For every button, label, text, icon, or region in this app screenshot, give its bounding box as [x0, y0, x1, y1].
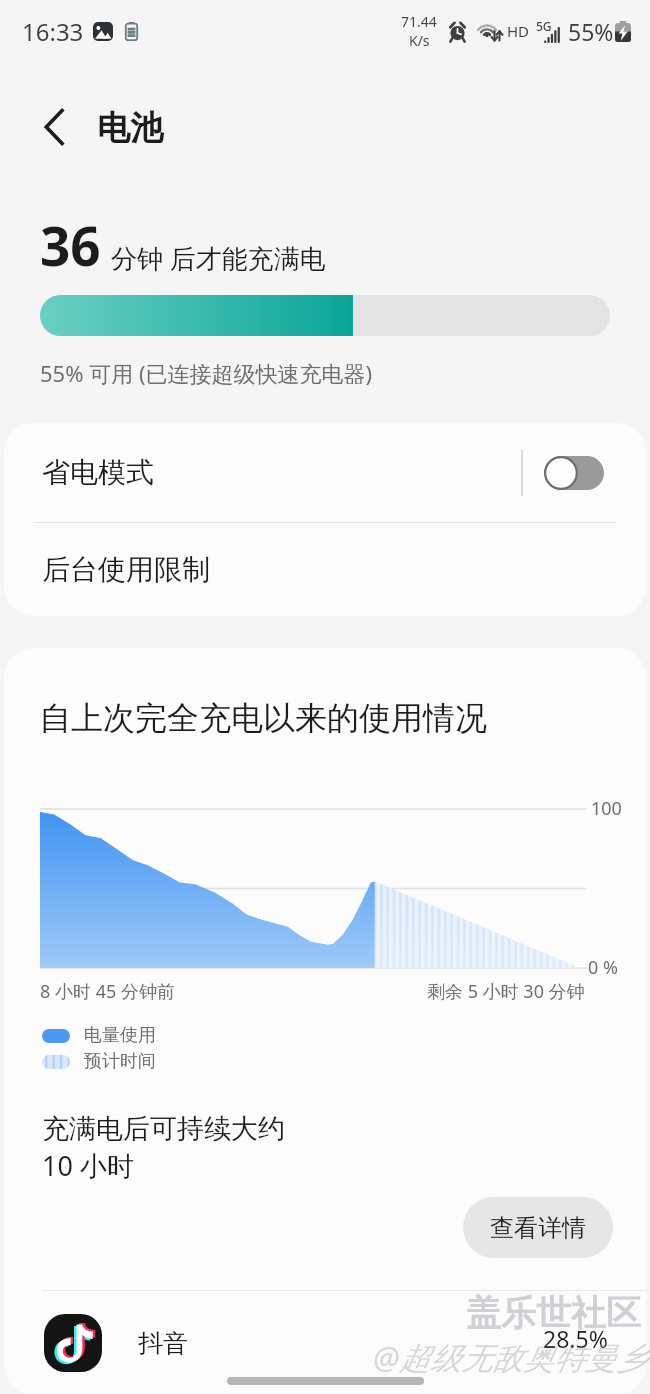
staticText: 电池: [97, 107, 163, 149]
staticText: 抖音: [138, 1328, 188, 1359]
staticText: 5G: [536, 18, 552, 34]
staticText: 盖乐世社区: [466, 1291, 641, 1335]
staticText: @超级无敌奥特曼乡: [373, 1336, 648, 1378]
staticText: K/s: [409, 31, 430, 50]
staticText: 省电模式: [42, 455, 154, 490]
staticText: 剩余 5 小时 30 分钟: [427, 979, 585, 1004]
staticText: 电量使用: [84, 1024, 156, 1047]
staticText: HD: [507, 21, 530, 41]
button[interactable]: 省电模式: [4, 423, 646, 522]
staticText: 预计时间: [84, 1050, 156, 1073]
staticText: 28.5%: [543, 1323, 608, 1354]
button[interactable]: 后台使用限制: [4, 523, 646, 616]
staticText: 充满电后可持续大约: [42, 1112, 285, 1146]
staticText: 100: [591, 796, 622, 821]
staticText: 后台使用限制: [42, 552, 210, 587]
staticText: 分钟 后才能充满电: [111, 240, 326, 276]
button[interactable]: 抖音: [4, 1291, 646, 1394]
staticText: 8 小时 45 分钟前: [40, 979, 175, 1004]
staticText: 55% 可用 (已连接超级快速充电器): [40, 358, 373, 388]
button[interactable]: Back: [26, 100, 80, 154]
button[interactable]: Power saving toggle: [544, 456, 604, 490]
staticText: 71.44: [401, 12, 437, 31]
button[interactable]: 查看详情: [463, 1197, 613, 1258]
staticText: 查看详情: [490, 1213, 586, 1243]
staticText: 16:33: [22, 15, 84, 48]
staticText: 10 小时: [42, 1147, 134, 1184]
staticText: 36: [40, 209, 101, 281]
staticText: 55%: [568, 16, 614, 47]
staticText: 0 %: [588, 955, 618, 980]
staticText: 自上次完全充电以来的使用情况: [39, 698, 487, 738]
